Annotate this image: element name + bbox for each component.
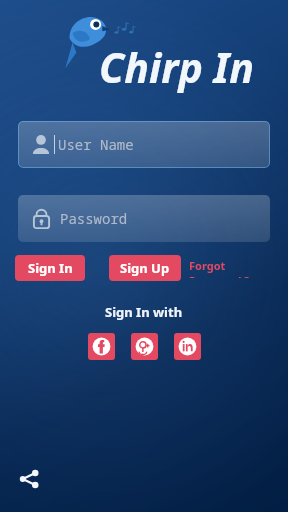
staticText: Sign In <box>28 259 73 277</box>
staticText: User Name <box>58 135 134 154</box>
staticText: Sign Up <box>120 259 170 277</box>
button[interactable]: Facebook <box>88 333 115 360</box>
button[interactable]: Share <box>16 466 42 492</box>
staticText: Sign In with <box>105 303 183 321</box>
staticText: Chirp In <box>99 39 254 95</box>
button[interactable]: Sign In <box>15 255 85 281</box>
staticText: Password <box>60 209 128 228</box>
staticText: Forgot Password ? <box>189 258 286 278</box>
button[interactable]: Forgot Password ? <box>187 254 288 282</box>
button[interactable]: Google Plus <box>131 333 158 360</box>
button[interactable]: LinkedIn <box>174 333 201 360</box>
button[interactable]: User Name <box>18 121 270 168</box>
button[interactable]: Password <box>18 195 270 242</box>
button[interactable]: Sign Up <box>109 255 181 281</box>
